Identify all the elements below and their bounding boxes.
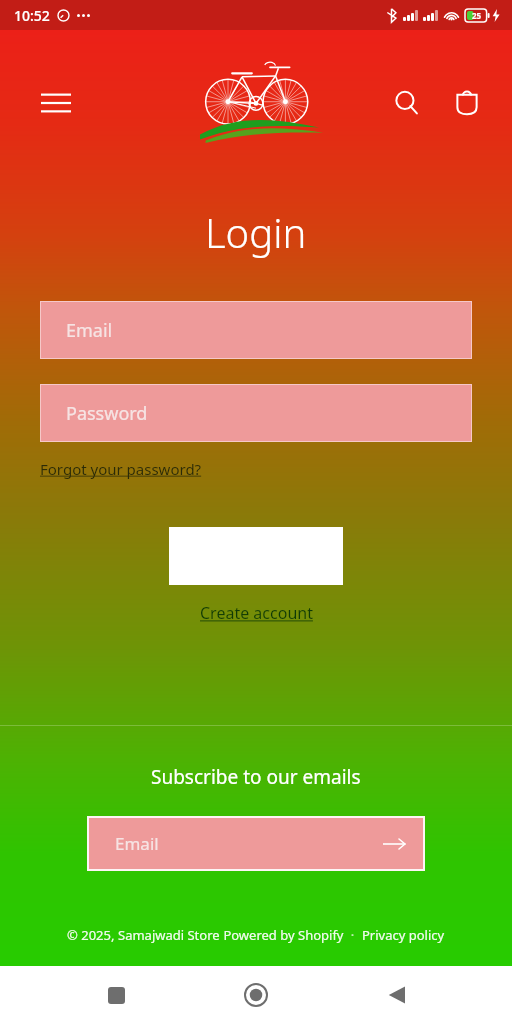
button[interactable]: Shopify — [298, 926, 344, 944]
button[interactable]: Create account — [200, 602, 313, 624]
button[interactable]: Search — [384, 80, 430, 126]
button[interactable]: Subscribe — [379, 829, 409, 859]
staticText: · — [344, 926, 362, 944]
staticText: Email — [115, 832, 159, 855]
staticText: © 2025, — [67, 926, 118, 944]
button[interactable]: Forgot your password? — [40, 459, 202, 479]
button[interactable]: Back — [372, 971, 420, 1019]
button[interactable]: Email — [87, 816, 425, 871]
button[interactable]: Recents — [92, 971, 140, 1019]
staticText: Password — [66, 401, 148, 426]
button[interactable]: Menu — [34, 81, 78, 125]
staticText: Samajwadi Store — [118, 926, 220, 944]
staticText: Powered by — [220, 926, 298, 944]
button[interactable]: Password — [40, 384, 472, 442]
staticText: Privacy policy — [362, 926, 445, 944]
staticText: 25 — [472, 10, 482, 21]
button[interactable]: Cart — [444, 80, 490, 126]
button[interactable]: Samajwadi Store — [118, 926, 220, 944]
staticText: Subscribe to our emails — [151, 764, 361, 790]
staticText: Email — [66, 318, 113, 343]
button[interactable]: Privacy policy — [362, 926, 445, 944]
button[interactable]: Email — [40, 301, 472, 359]
staticText: Login — [205, 205, 307, 259]
staticText: 10:52 — [14, 6, 50, 25]
button[interactable]: Home — [232, 971, 280, 1019]
staticText: Forgot your password? — [40, 459, 202, 479]
staticText: Shopify — [298, 926, 344, 944]
staticText: Create account — [200, 602, 313, 624]
